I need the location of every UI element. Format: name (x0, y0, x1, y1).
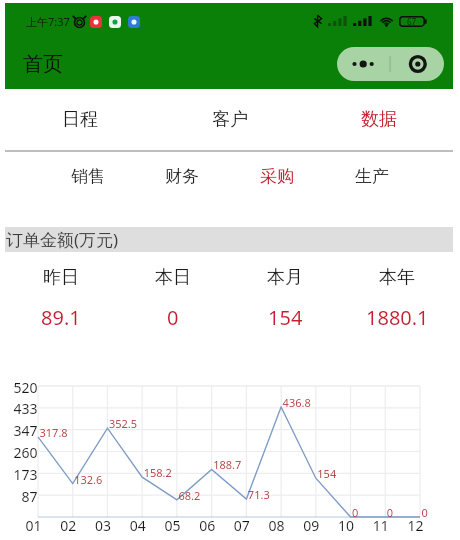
staticText: 昨日 (43, 266, 79, 289)
staticText: 采购 (260, 166, 294, 187)
staticText: 生产 (355, 166, 389, 187)
staticText: 上午7:37 (26, 14, 70, 29)
button[interactable]: 昨日 (5, 266, 117, 331)
staticText: 财务 (165, 166, 199, 187)
staticText: 0 (167, 304, 179, 331)
staticText: 本日 (155, 266, 191, 289)
button[interactable]: 数据 (304, 89, 453, 150)
button[interactable]: More options (337, 47, 444, 81)
staticText: 日程 (62, 108, 98, 131)
staticText: 订单金额(万元) (6, 228, 119, 251)
staticText: 154 (268, 304, 303, 331)
staticText: 本年 (379, 266, 415, 289)
button[interactable]: 本月 (229, 266, 341, 331)
staticText: 首页 (23, 52, 63, 77)
staticText: 本月 (267, 266, 303, 289)
button[interactable]: 本日 (117, 266, 229, 331)
button[interactable]: 客户 (155, 89, 304, 150)
button[interactable]: 日程 (5, 89, 155, 150)
button[interactable]: 销售 (41, 150, 135, 203)
staticText: 客户 (212, 108, 248, 131)
staticText: 89.1 (41, 304, 81, 331)
staticText: 1880.1 (366, 304, 429, 331)
button[interactable]: 采购 (229, 150, 324, 203)
button[interactable]: 本年 (341, 266, 453, 331)
button[interactable]: 财务 (135, 150, 229, 203)
staticText: 67 (407, 16, 417, 27)
staticText: 数据 (361, 108, 397, 131)
staticText: 销售 (71, 166, 105, 187)
button[interactable]: 生产 (324, 150, 419, 203)
